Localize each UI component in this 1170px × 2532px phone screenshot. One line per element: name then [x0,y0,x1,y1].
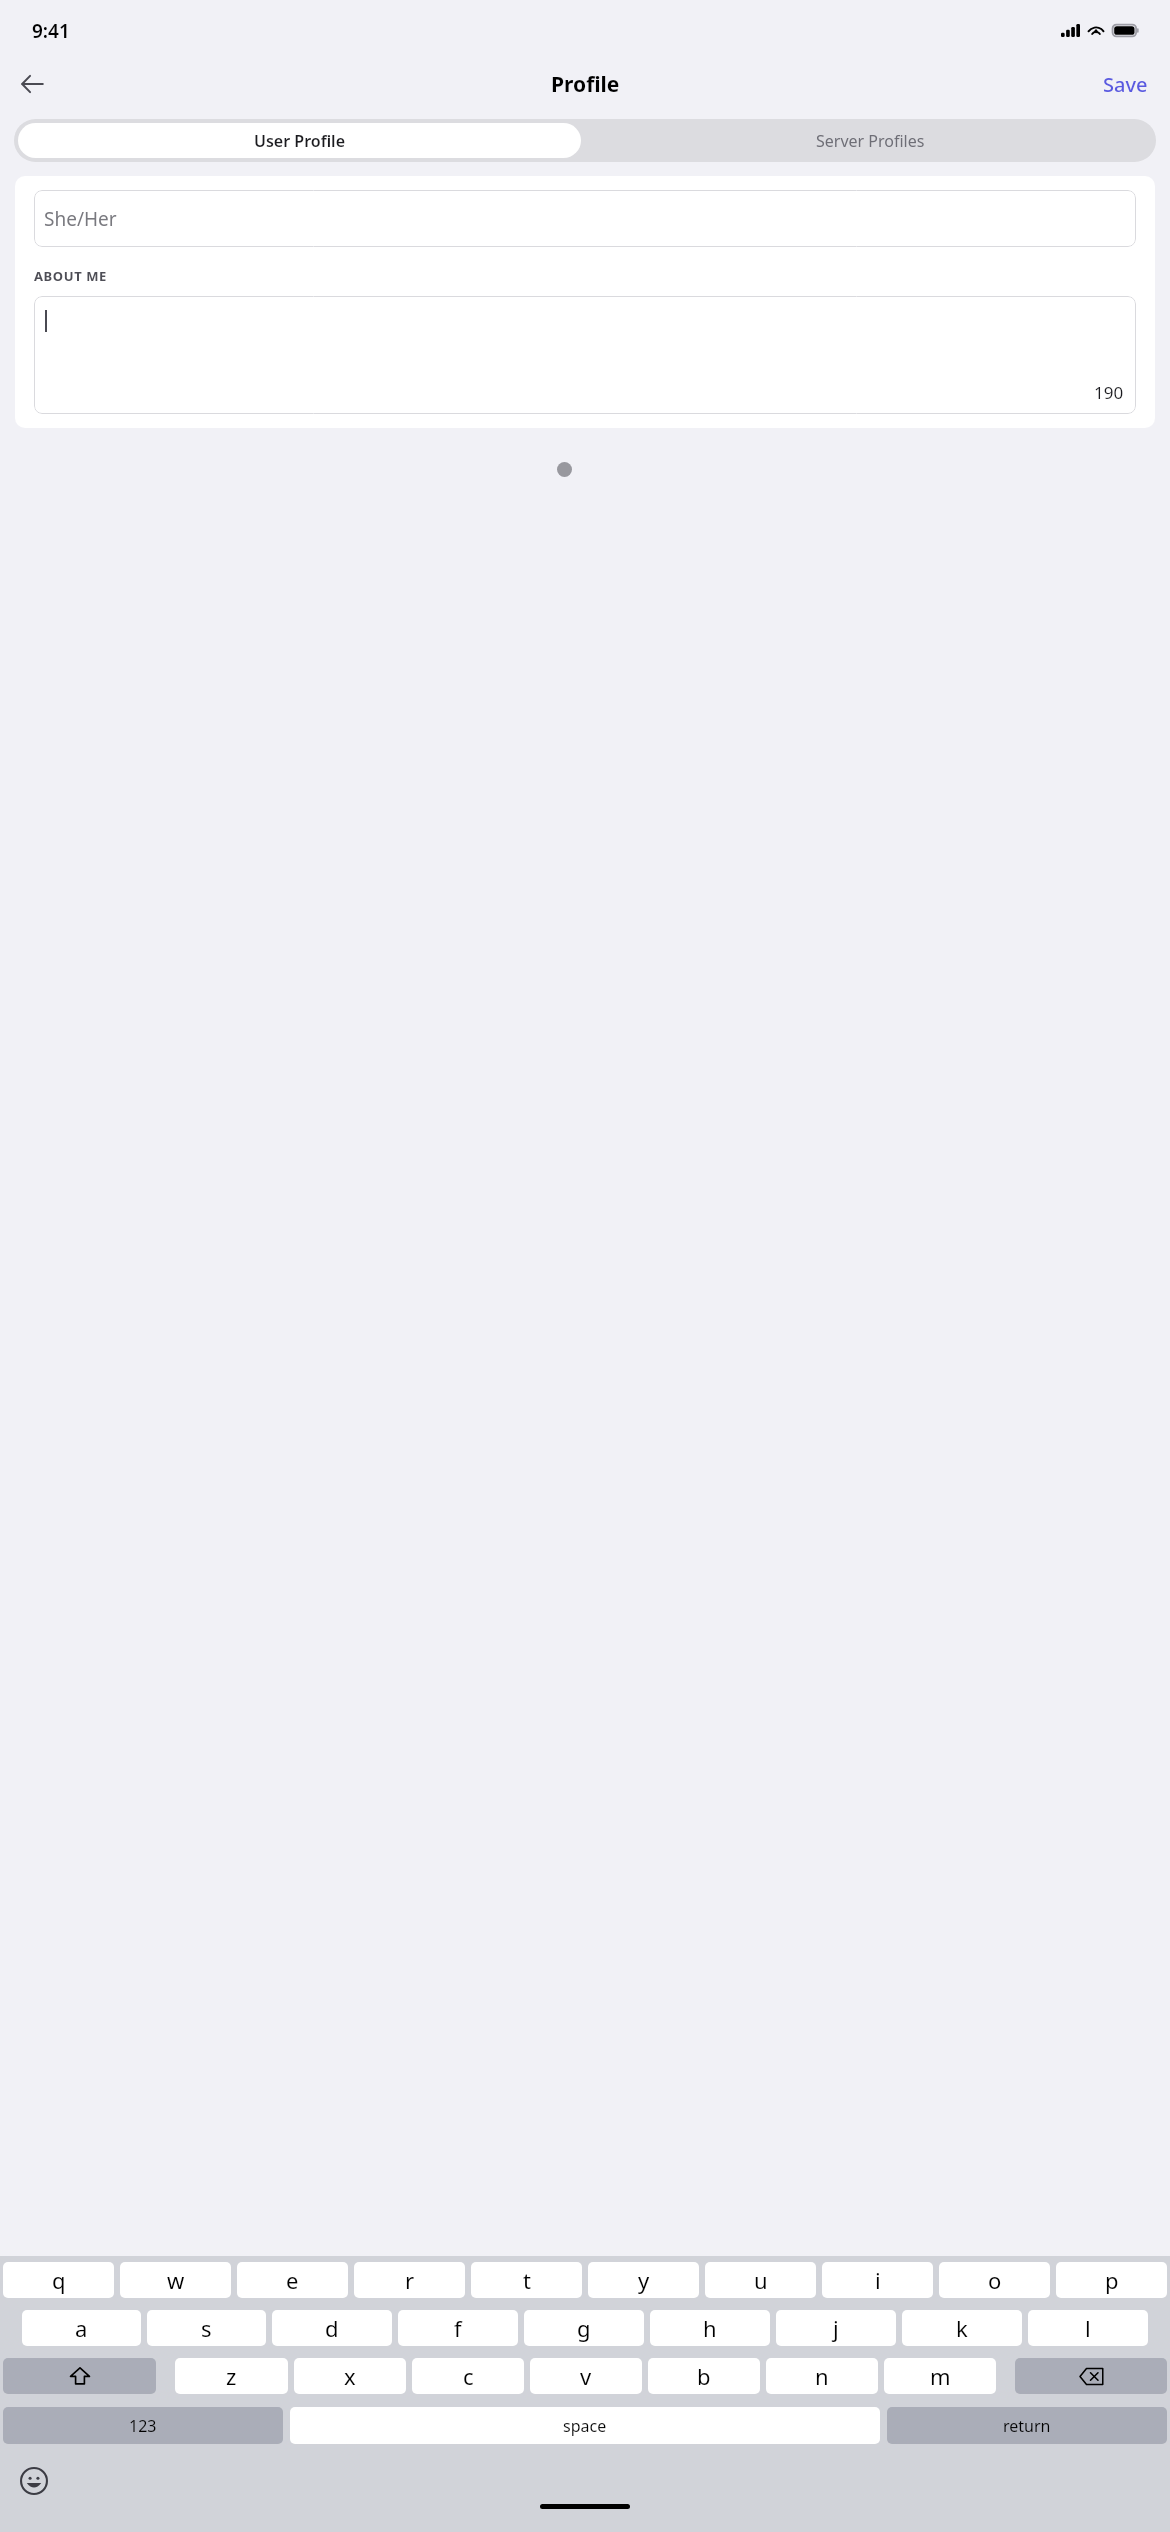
staticText: f [454,2313,462,2343]
button[interactable]: Shift [3,2358,156,2394]
staticText: She/Her [44,206,117,232]
staticText: space [563,2415,607,2437]
staticText: y [638,2265,650,2295]
button[interactable]: e [237,2262,348,2298]
staticText: d [325,2313,339,2343]
staticText: n [815,2361,829,2391]
staticText: i [875,2265,881,2295]
staticText: b [697,2361,711,2391]
button[interactable]: User Profile [18,123,581,158]
staticText: l [1085,2313,1091,2343]
staticText: Profile [551,70,620,99]
staticText: c [463,2361,474,2391]
staticText: j [833,2313,839,2343]
button[interactable]: i [822,2262,933,2298]
staticText: 9:41 [32,18,70,44]
staticText: k [956,2313,968,2343]
button[interactable]: r [354,2262,465,2298]
button[interactable]: Backspace [1015,2358,1167,2394]
button[interactable]: k [902,2310,1022,2346]
button[interactable]: d [272,2310,392,2346]
staticText: s [201,2313,212,2343]
staticText: return [1003,2415,1051,2437]
button[interactable]: Emoji [13,2460,55,2502]
staticText: v [580,2361,592,2391]
staticText: t [523,2265,531,2295]
button[interactable]: y [588,2262,699,2298]
staticText: o [988,2265,1002,2295]
button[interactable]: q [3,2262,114,2298]
staticText: e [286,2265,299,2295]
staticText: r [405,2265,415,2295]
button[interactable]: v [530,2358,642,2394]
staticText: User Profile [254,130,345,152]
button[interactable]: s [147,2310,266,2346]
button[interactable]: g [524,2310,644,2346]
button[interactable]: c [412,2358,524,2394]
button[interactable]: She/Her [34,190,1136,247]
staticText: 123 [129,2415,157,2437]
staticText: Save [1103,71,1148,98]
staticText: w [167,2265,185,2295]
staticText: p [1105,2265,1119,2295]
button[interactable]: a [22,2310,141,2346]
button[interactable]: 190 [34,296,1136,414]
button[interactable]: n [766,2358,878,2394]
button[interactable]: Server Profiles [585,119,1156,162]
staticText: h [703,2313,717,2343]
staticText: q [52,2265,66,2295]
button[interactable]: h [650,2310,770,2346]
staticText: Server Profiles [816,130,925,152]
staticText: m [930,2361,951,2391]
staticText: 190 [1094,381,1124,404]
button[interactable]: m [884,2358,996,2394]
button[interactable]: f [398,2310,518,2346]
staticText: x [344,2361,356,2391]
button[interactable]: j [776,2310,896,2346]
staticText: g [577,2313,591,2343]
button[interactable]: t [471,2262,582,2298]
staticText: u [754,2265,768,2295]
button[interactable]: p [1056,2262,1167,2298]
staticText: z [226,2361,237,2391]
staticText: ABOUT ME [34,267,107,285]
button[interactable]: x [294,2358,406,2394]
button[interactable] [557,462,572,477]
button[interactable]: o [939,2262,1050,2298]
button[interactable]: return [887,2407,1167,2444]
button[interactable]: 123 [3,2407,283,2444]
button[interactable]: z [175,2358,288,2394]
button[interactable]: l [1028,2310,1148,2346]
button[interactable]: Save [1093,63,1158,106]
button[interactable]: Back [6,58,58,110]
button[interactable]: w [120,2262,231,2298]
staticText: a [75,2313,88,2343]
button[interactable]: b [648,2358,760,2394]
button[interactable]: u [705,2262,816,2298]
button[interactable]: space [290,2407,880,2444]
